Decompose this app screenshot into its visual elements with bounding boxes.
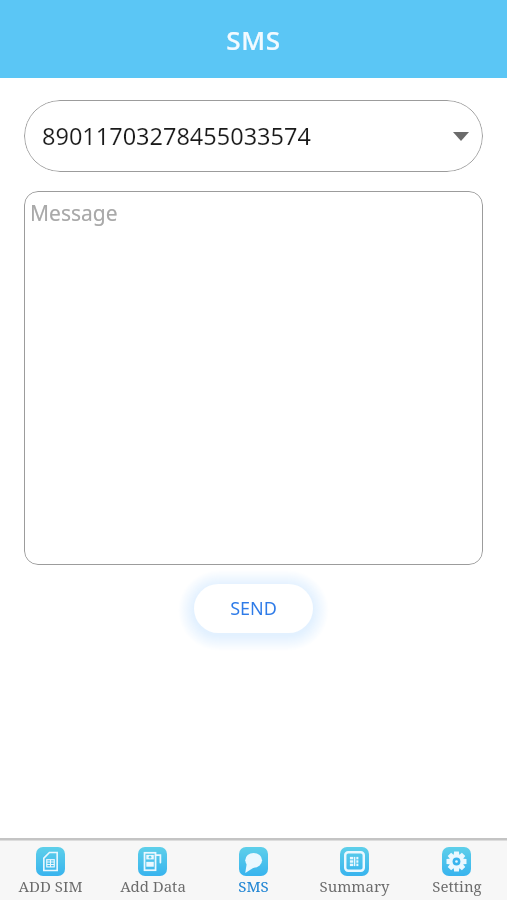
staticText: Setting bbox=[432, 876, 482, 896]
button[interactable]: Setting bbox=[406, 838, 507, 900]
button[interactable]: SMS bbox=[203, 838, 304, 900]
button[interactable]: Add Data bbox=[102, 838, 203, 900]
staticText: Message bbox=[30, 199, 118, 228]
staticText: SMS bbox=[226, 22, 281, 57]
button[interactable]: Message bbox=[24, 191, 483, 565]
button[interactable]: Summary bbox=[304, 838, 405, 900]
button[interactable]: ADD SIM bbox=[0, 838, 101, 900]
staticText: SMS bbox=[238, 876, 269, 896]
button[interactable]: SEND bbox=[194, 584, 313, 633]
staticText: SEND bbox=[230, 596, 277, 621]
staticText: ADD SIM bbox=[18, 876, 83, 896]
staticText: Add Data bbox=[120, 876, 186, 896]
staticText: Summary bbox=[319, 876, 390, 896]
staticText: 89011703278455033574 bbox=[42, 120, 453, 152]
button[interactable]: 89011703278455033574 bbox=[24, 100, 483, 172]
